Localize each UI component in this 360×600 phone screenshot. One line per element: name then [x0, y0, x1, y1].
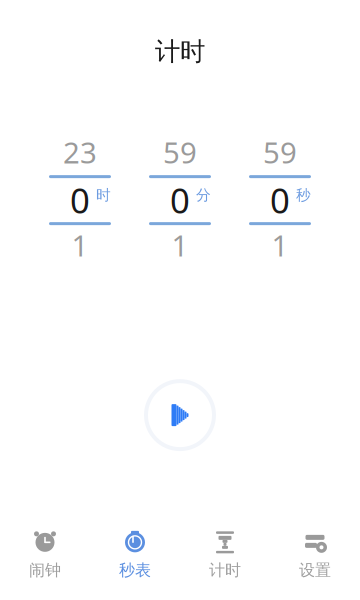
staticText: 0 [270, 177, 290, 223]
staticText: 秒表 [119, 560, 151, 580]
staticText: 闹钟 [29, 560, 61, 580]
staticText: 59 [163, 133, 197, 172]
button[interactable]: 设置 [270, 524, 360, 586]
staticText: 计时 [155, 36, 205, 67]
staticText: 1 [171, 226, 188, 265]
staticText: 59 [263, 133, 297, 172]
staticText: 1 [271, 226, 288, 265]
staticText: 0 [70, 177, 90, 223]
staticText: 0 [170, 177, 190, 223]
button[interactable]: 秒表 [90, 524, 180, 586]
button[interactable]: 闹钟 [0, 524, 90, 586]
staticText: 设置 [299, 560, 331, 580]
staticText: 1 [71, 226, 88, 265]
staticText: 23 [63, 133, 97, 172]
staticText: 分 [196, 186, 211, 204]
staticText: 秒 [296, 186, 311, 204]
staticText: 时 [96, 186, 111, 204]
staticText: 计时 [209, 560, 241, 580]
button[interactable]: 计时 [180, 524, 270, 586]
button[interactable]: 开始 [142, 377, 218, 453]
